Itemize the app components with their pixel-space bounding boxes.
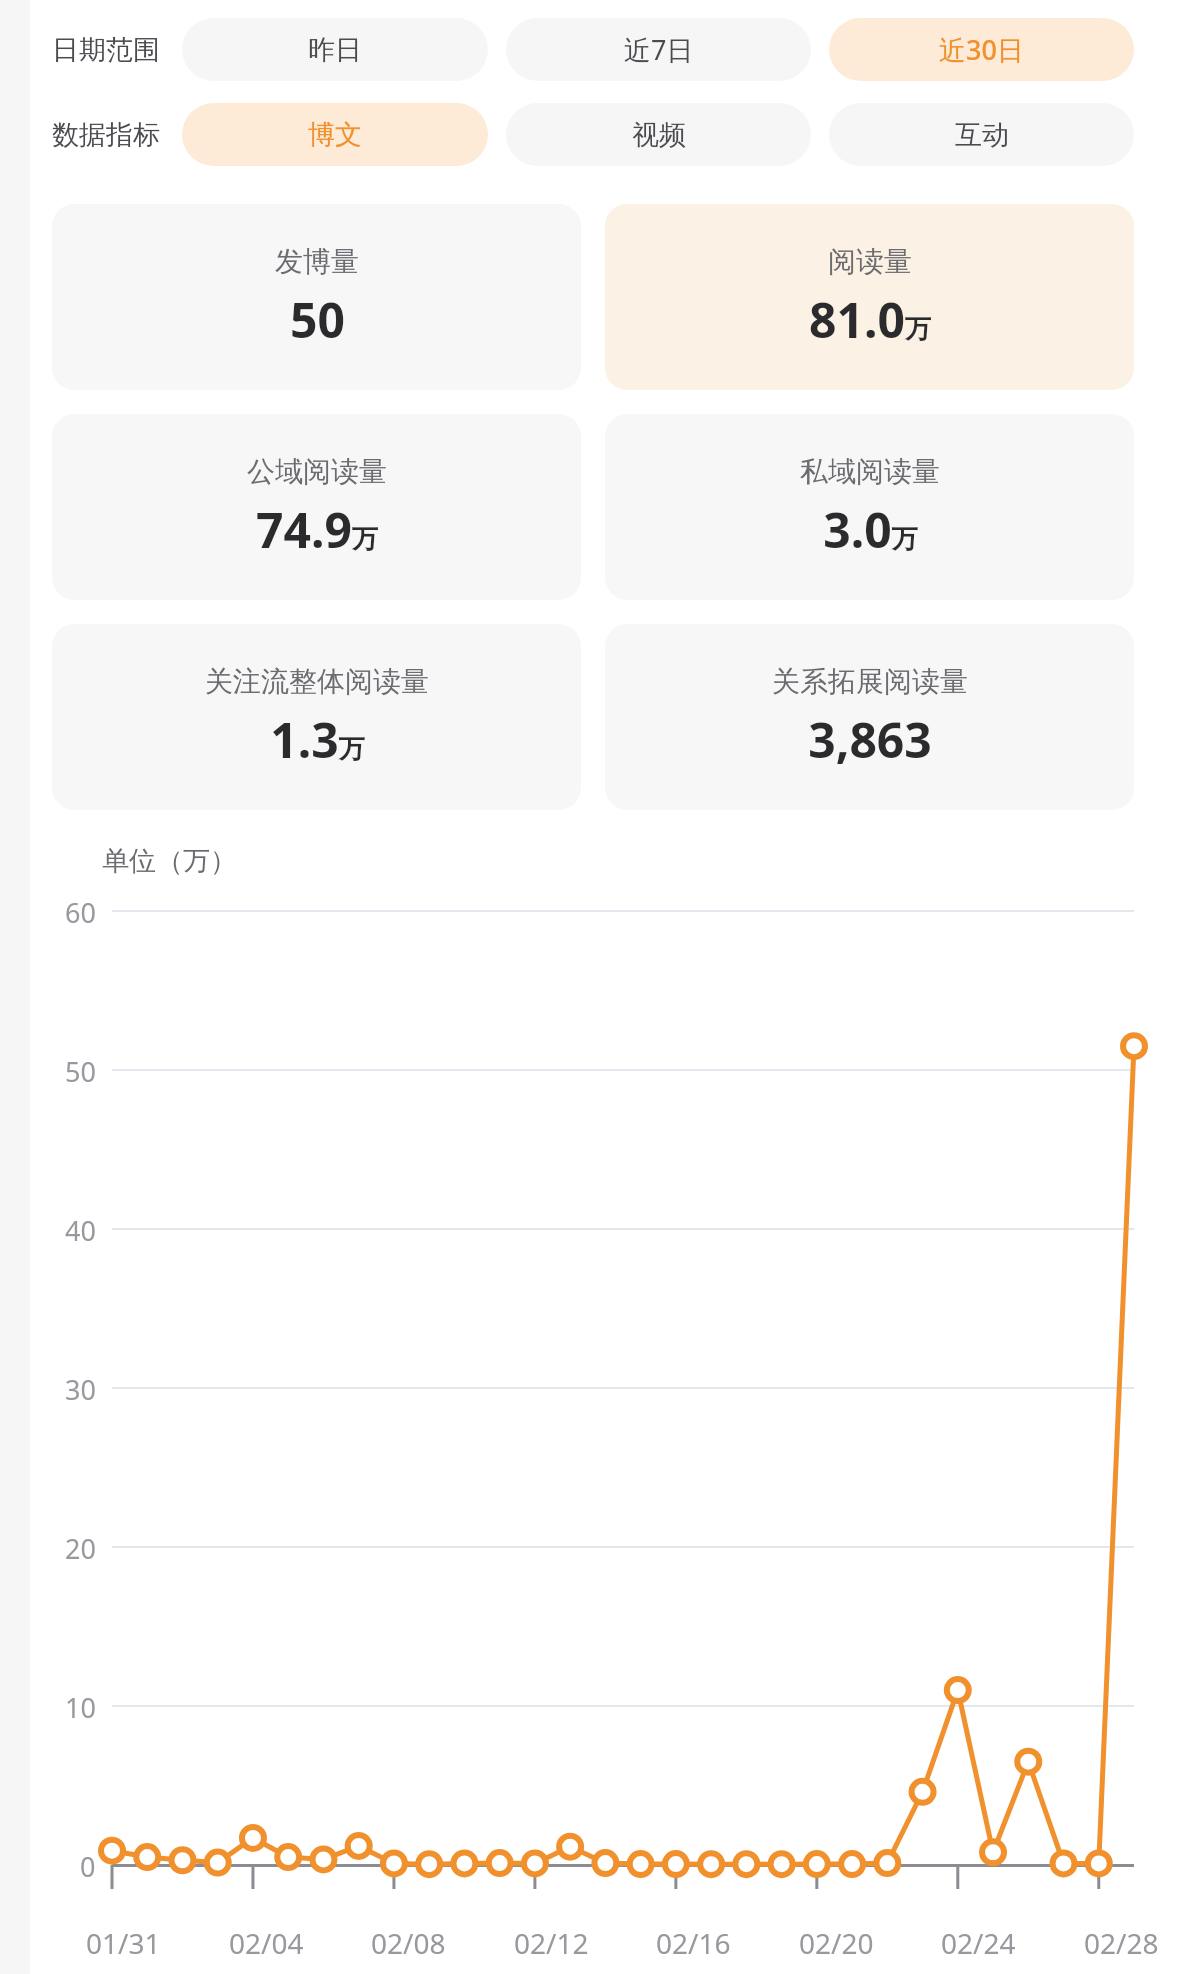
staticText: 视频: [632, 118, 686, 152]
staticText: 0: [80, 1848, 96, 1882]
button[interactable]: 私域阅读量: [605, 414, 1134, 600]
staticText: 博文: [308, 118, 362, 152]
staticText: 01/31: [86, 1924, 161, 1962]
staticText: 81.0万: [809, 287, 931, 352]
staticText: 昨日: [308, 33, 362, 67]
staticText: 1.3万: [270, 707, 365, 772]
staticText: 02/12: [514, 1924, 589, 1962]
button[interactable]: 发博量: [52, 204, 581, 390]
button[interactable]: 博文: [182, 103, 488, 166]
staticText: 数据指标: [52, 118, 160, 152]
staticText: 50: [290, 287, 345, 352]
staticText: 近7日: [624, 31, 694, 68]
staticText: 互动: [955, 118, 1009, 152]
staticText: 日期范围: [52, 33, 160, 67]
staticText: 公域阅读量: [247, 454, 387, 489]
staticText: 74.9万: [256, 497, 378, 562]
staticText: 60: [65, 894, 96, 928]
staticText: 02/24: [941, 1924, 1016, 1962]
button[interactable]: 视频: [506, 103, 811, 166]
staticText: 发博量: [275, 244, 359, 279]
staticText: 3,863: [808, 707, 932, 772]
staticText: 02/20: [799, 1924, 874, 1962]
staticText: 单位（万）: [102, 844, 237, 878]
staticText: 近30日: [939, 31, 1024, 68]
button[interactable]: 关注流整体阅读量: [52, 624, 581, 810]
staticText: 私域阅读量: [800, 454, 940, 489]
staticText: 40: [65, 1212, 96, 1246]
staticText: 02/04: [229, 1924, 304, 1962]
staticText: 02/16: [656, 1924, 731, 1962]
staticText: 3.0万: [823, 497, 918, 562]
staticText: 02/08: [371, 1924, 446, 1962]
staticText: 02/28: [1084, 1924, 1159, 1962]
staticText: 关系拓展阅读量: [772, 664, 968, 699]
staticText: 阅读量: [828, 244, 912, 279]
button[interactable]: 公域阅读量: [52, 414, 581, 600]
button[interactable]: 互动: [829, 103, 1134, 166]
staticText: 30: [65, 1371, 96, 1405]
staticText: 10: [65, 1689, 96, 1723]
button[interactable]: 阅读量: [605, 204, 1134, 390]
staticText: 关注流整体阅读量: [205, 664, 429, 699]
staticText: 50: [65, 1053, 96, 1087]
button[interactable]: 关系拓展阅读量: [605, 624, 1134, 810]
button[interactable]: 昨日: [182, 18, 488, 81]
button[interactable]: 近7日: [506, 18, 811, 81]
staticText: 20: [65, 1530, 96, 1564]
button[interactable]: 近30日: [829, 18, 1134, 81]
